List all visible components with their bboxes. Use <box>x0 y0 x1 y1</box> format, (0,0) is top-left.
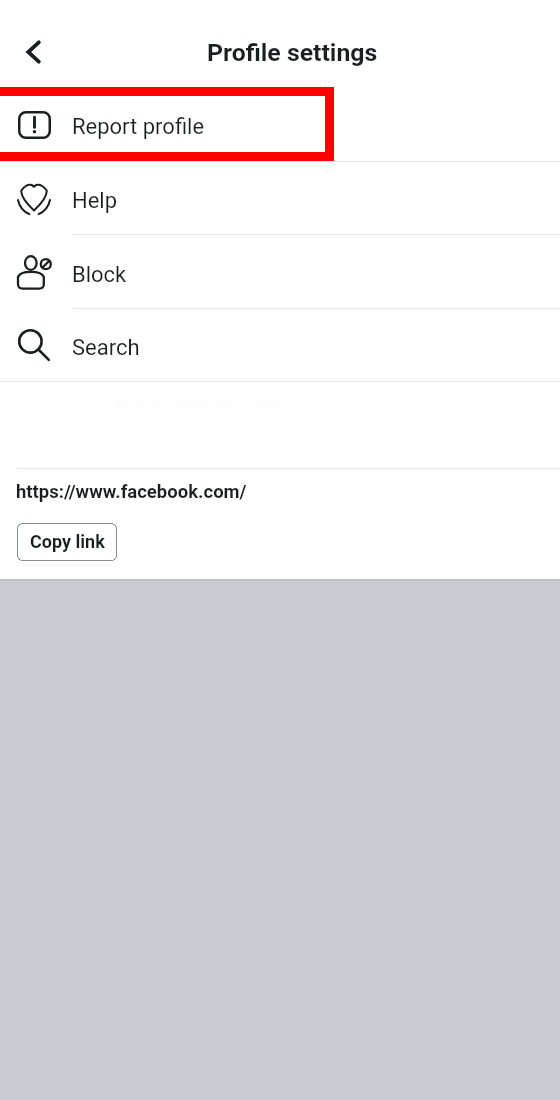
staticText: Report profile <box>72 114 205 140</box>
staticText: Search <box>72 335 140 361</box>
staticText: Copy link <box>30 531 105 552</box>
button[interactable]: Search <box>0 309 560 381</box>
staticText: Profile settings <box>207 38 378 67</box>
button[interactable]: Report profile <box>0 87 560 161</box>
button[interactable]: Back <box>6 24 62 80</box>
button[interactable]: Help <box>0 162 560 234</box>
button[interactable]: Copy link <box>17 523 117 561</box>
button[interactable]: Block <box>0 235 560 308</box>
staticText: https://www.facebook.com/ <box>16 481 247 503</box>
staticText: Help <box>72 188 118 214</box>
staticText: Block <box>72 262 127 288</box>
